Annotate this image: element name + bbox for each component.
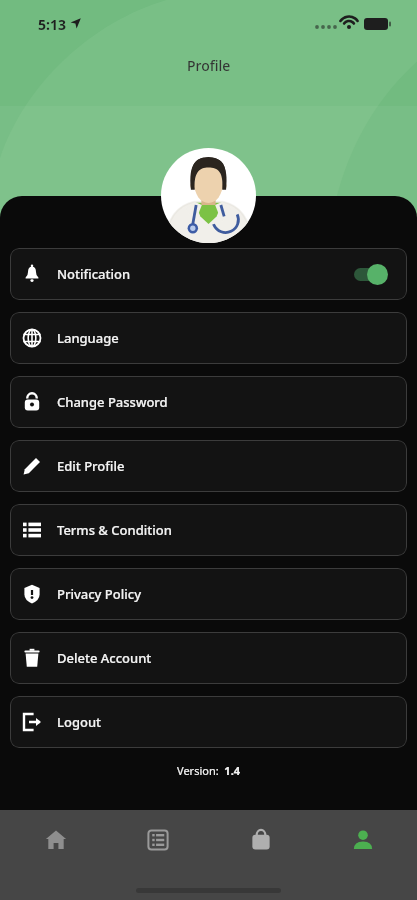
button[interactable] xyxy=(339,818,387,862)
button[interactable]: Language xyxy=(10,312,407,364)
staticText: Profile xyxy=(187,56,231,75)
button[interactable] xyxy=(134,818,182,862)
staticText: Terms & Condition xyxy=(57,521,172,539)
staticText: Edit Profile xyxy=(57,457,125,475)
staticText: Change Password xyxy=(57,393,168,411)
button[interactable]: Logout xyxy=(10,696,407,748)
staticText: Privacy Policy xyxy=(57,585,141,603)
button[interactable]: Edit Profile xyxy=(10,440,407,492)
button[interactable]: Terms & Condition xyxy=(10,504,407,556)
button[interactable] xyxy=(237,818,285,862)
button[interactable] xyxy=(354,263,388,285)
staticText: Delete Account xyxy=(57,649,152,667)
staticText: Notification xyxy=(57,265,131,283)
button[interactable]: Delete Account xyxy=(10,632,407,684)
staticText: 5:13 xyxy=(38,15,66,34)
button[interactable]: Notification xyxy=(10,248,407,300)
button[interactable] xyxy=(32,818,80,862)
staticText: Language xyxy=(57,329,119,347)
button[interactable]: Privacy Policy xyxy=(10,568,407,620)
staticText: Logout xyxy=(57,713,102,731)
staticText: Version: 1.4 xyxy=(177,763,241,778)
button[interactable]: Change Password xyxy=(10,376,407,428)
